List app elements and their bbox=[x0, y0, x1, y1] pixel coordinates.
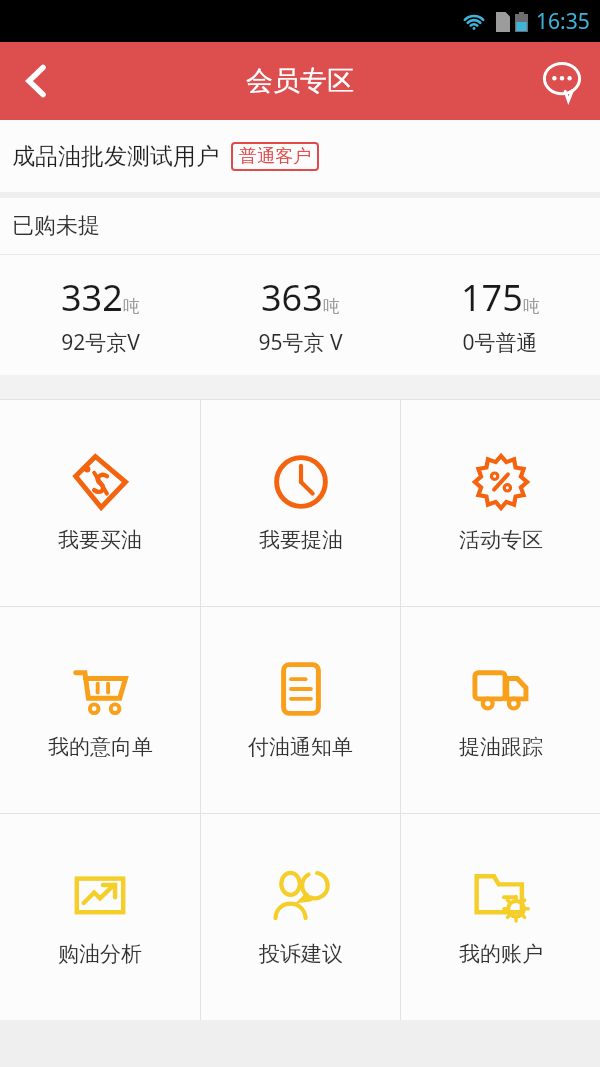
staticText: 吨 bbox=[123, 296, 140, 317]
staticText: 16:35 bbox=[536, 7, 590, 36]
button[interactable]: 363 bbox=[200, 255, 400, 375]
staticText: 363 bbox=[261, 273, 323, 322]
button[interactable]: More options bbox=[524, 42, 600, 120]
button[interactable]: 我要买油 bbox=[0, 400, 200, 606]
staticText: 投诉建议 bbox=[259, 941, 343, 967]
staticText: 我的意向单 bbox=[48, 734, 153, 760]
staticText: 付油通知单 bbox=[248, 734, 353, 760]
staticText: 会员专区 bbox=[246, 64, 354, 98]
button[interactable]: 332 bbox=[0, 255, 200, 375]
button[interactable]: 我要提油 bbox=[201, 400, 400, 606]
button[interactable]: 活动专区 bbox=[401, 400, 600, 606]
staticText: 332 bbox=[61, 273, 123, 322]
staticText: 吨 bbox=[523, 296, 540, 317]
staticText: 175 bbox=[461, 273, 523, 322]
staticText: 0号普通 bbox=[462, 328, 538, 357]
staticText: 提油跟踪 bbox=[459, 734, 543, 760]
staticText: 92号京V bbox=[61, 328, 140, 357]
button[interactable]: 购油分析 bbox=[0, 814, 200, 1020]
button[interactable]: 提油跟踪 bbox=[401, 607, 600, 813]
button[interactable]: 付油通知单 bbox=[201, 607, 400, 813]
staticText: 吨 bbox=[323, 296, 340, 317]
staticText: 95号京 V bbox=[258, 328, 343, 357]
button[interactable]: 175 bbox=[400, 255, 600, 375]
staticText: 我要提油 bbox=[259, 527, 343, 553]
button[interactable]: Back bbox=[0, 42, 72, 120]
staticText: 购油分析 bbox=[58, 941, 142, 967]
staticText: 已购未提 bbox=[12, 212, 100, 240]
staticText: 成品油批发测试用户 bbox=[12, 142, 219, 171]
staticText: 我的账户 bbox=[459, 941, 543, 967]
button[interactable]: 我的意向单 bbox=[0, 607, 200, 813]
staticText: 活动专区 bbox=[459, 527, 543, 553]
button[interactable]: 我的账户 bbox=[401, 814, 600, 1020]
staticText: 我要买油 bbox=[58, 527, 142, 553]
staticText: 普通客户 bbox=[239, 145, 311, 168]
button[interactable]: 投诉建议 bbox=[201, 814, 400, 1020]
